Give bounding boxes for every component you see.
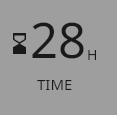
button[interactable]: Timer — [0, 0, 117, 115]
staticText: 28 — [30, 6, 87, 73]
other: Timer — [13, 33, 26, 54]
staticText: H — [87, 45, 98, 64]
staticText: TIME — [37, 74, 73, 94]
